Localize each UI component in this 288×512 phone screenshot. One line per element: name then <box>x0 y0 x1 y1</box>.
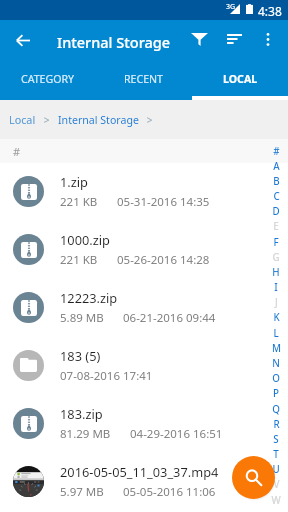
button[interactable]: T <box>267 447 285 462</box>
staticText: 3G <box>226 2 236 12</box>
staticText: D <box>272 205 280 218</box>
staticText: # <box>13 144 21 159</box>
staticText: 2016-05-05_11_03_37.mp4 <box>60 463 219 480</box>
staticText: T <box>273 448 279 461</box>
staticText: 183 (5) <box>60 347 101 364</box>
staticText: 05-26-2016 14:28 <box>117 252 210 268</box>
staticText: L <box>273 327 279 340</box>
button[interactable]: G <box>267 250 285 265</box>
staticText: 12223.zip <box>60 289 118 306</box>
staticText: > <box>36 113 58 127</box>
staticText: A <box>273 160 280 173</box>
button[interactable]: S <box>267 432 285 447</box>
staticText: 5.97 MB <box>60 484 104 500</box>
staticText: CATEGORY <box>21 72 75 86</box>
button[interactable]: M <box>267 341 285 356</box>
button[interactable]: 1.zip <box>0 162 288 220</box>
button[interactable]: A <box>267 159 285 174</box>
button[interactable]: J <box>267 295 285 310</box>
staticText: M <box>272 342 281 355</box>
staticText: P <box>273 387 279 400</box>
staticText: 04-29-2016 16:51 <box>130 426 223 442</box>
staticText: 05-31-2016 14:35 <box>117 194 210 210</box>
staticText: LOCAL <box>223 72 258 86</box>
staticText: 05-05-2016 11:06 <box>123 484 216 500</box>
staticText: 4:38 <box>258 3 282 19</box>
button[interactable]: V <box>267 477 285 492</box>
staticText: R <box>273 418 280 431</box>
button[interactable]: LOCAL <box>192 62 288 100</box>
staticText: U <box>272 463 280 476</box>
button[interactable]: F <box>267 235 285 250</box>
button[interactable]: L <box>267 326 285 341</box>
button[interactable]: 1000.zip <box>0 220 288 278</box>
staticText: 1.zip <box>60 173 88 190</box>
staticText: K <box>273 311 280 324</box>
button[interactable]: CATEGORY <box>0 62 96 100</box>
button[interactable]: Back <box>3 20 43 62</box>
staticText: 221 KB <box>60 252 98 268</box>
button[interactable]: U <box>267 462 285 477</box>
button[interactable]: W <box>267 493 285 508</box>
button[interactable]: Sort <box>218 20 251 62</box>
staticText: 221 KB <box>60 194 98 210</box>
button[interactable]: D <box>267 204 285 219</box>
button[interactable]: N <box>267 356 285 371</box>
staticText: # <box>273 145 280 158</box>
staticText: O <box>272 372 280 385</box>
button[interactable]: Search <box>232 456 275 499</box>
button[interactable]: RECENT <box>96 62 192 100</box>
button[interactable]: 12223.zip <box>0 278 288 336</box>
staticText: C <box>273 190 280 203</box>
staticText: RECENT <box>124 72 164 86</box>
staticText: Q <box>272 403 280 416</box>
button[interactable]: E <box>267 219 285 234</box>
staticText: > <box>139 113 153 127</box>
staticText: 81.29 MB <box>60 426 111 442</box>
staticText: G <box>272 251 280 264</box>
button[interactable]: I <box>267 280 285 295</box>
button[interactable]: 2016-05-05_11_03_37.mp4 <box>0 452 288 510</box>
button[interactable]: P <box>267 386 285 401</box>
staticText: 1000.zip <box>60 231 110 248</box>
button[interactable]: Q <box>267 402 285 417</box>
staticText: H <box>272 266 280 279</box>
button[interactable]: O <box>267 371 285 386</box>
button[interactable]: Local <box>9 112 36 127</box>
button[interactable]: K <box>267 310 285 325</box>
button[interactable]: More options <box>252 20 284 62</box>
button[interactable]: B <box>267 174 285 189</box>
staticText: I <box>274 281 278 294</box>
staticText: 06-21-2016 09:44 <box>123 310 216 326</box>
button[interactable]: Filter <box>183 20 216 62</box>
button[interactable]: # <box>267 144 285 159</box>
button[interactable]: Internal Storage <box>58 113 139 127</box>
staticText: F <box>273 236 279 249</box>
staticText: 183.zip <box>60 405 103 422</box>
staticText: J <box>275 296 278 309</box>
staticText: 07-08-2016 17:41 <box>60 368 153 384</box>
staticText: 5.89 MB <box>60 310 104 326</box>
staticText: B <box>273 175 280 188</box>
staticText: Internal Storage <box>57 32 171 52</box>
button[interactable]: 183.zip <box>0 394 288 452</box>
staticText: W <box>271 494 281 507</box>
button[interactable]: 183 (5) <box>0 336 288 394</box>
staticText: S <box>273 433 279 446</box>
staticText: E <box>273 220 279 233</box>
button[interactable]: H <box>267 265 285 280</box>
button[interactable]: R <box>267 417 285 432</box>
staticText: V <box>273 478 280 491</box>
staticText: N <box>272 357 280 370</box>
button[interactable]: C <box>267 189 285 204</box>
